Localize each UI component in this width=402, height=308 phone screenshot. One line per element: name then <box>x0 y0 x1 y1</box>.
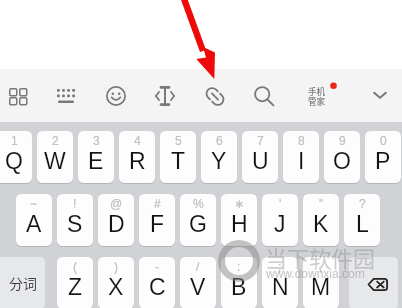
button[interactable]: % <box>180 194 216 246</box>
staticText: 5 <box>175 134 182 147</box>
staticText: S <box>67 211 83 237</box>
button[interactable]: Hide keyboard <box>373 90 387 100</box>
staticText: M <box>311 274 331 300</box>
button[interactable]: ! <box>57 194 93 246</box>
staticText: P <box>375 148 391 174</box>
staticText: W <box>44 148 66 174</box>
button[interactable]: @ <box>98 194 134 246</box>
button[interactable]: Backspace <box>349 257 398 308</box>
staticText: U <box>252 148 269 174</box>
button[interactable]: 7 <box>242 131 278 183</box>
staticText: 2 <box>52 134 59 147</box>
staticText: E <box>88 148 104 174</box>
staticText: R <box>129 148 146 174</box>
staticText: Y <box>211 148 227 174</box>
button[interactable]: 2 <box>37 131 73 183</box>
staticText: 8 <box>298 134 305 147</box>
button[interactable]: # <box>139 194 175 246</box>
staticText: 0 <box>380 134 387 147</box>
staticText: F <box>150 211 165 237</box>
staticText: Q <box>5 148 23 174</box>
staticText: " <box>319 197 324 210</box>
button[interactable]: 手机 管家 <box>304 82 340 108</box>
staticText: ? <box>359 197 366 210</box>
staticText: B <box>231 274 247 300</box>
button[interactable]: ? <box>344 194 380 246</box>
button[interactable]: " <box>303 194 339 246</box>
staticText: I <box>298 148 305 174</box>
button[interactable]: ~ <box>16 194 52 246</box>
staticText: 1 <box>11 134 18 147</box>
staticText: L <box>356 211 369 237</box>
staticText: N <box>272 274 289 300</box>
staticText: 手机 管家 <box>308 85 326 107</box>
staticText: O <box>333 148 351 174</box>
staticText: , <box>319 260 323 273</box>
staticText: H <box>231 211 248 237</box>
button[interactable]: ; <box>262 257 298 308</box>
staticText: % <box>193 197 204 210</box>
staticText: 4 <box>134 134 141 147</box>
staticText: / <box>196 260 200 273</box>
button[interactable]: Move cursor <box>155 85 175 107</box>
staticText: : <box>237 260 241 273</box>
button[interactable]: 8 <box>283 131 319 183</box>
button[interactable]: 4 <box>119 131 155 183</box>
button[interactable]: ( <box>57 257 93 308</box>
staticText: K <box>313 211 329 237</box>
button[interactable]: , <box>303 257 339 308</box>
button[interactable]: Symbols <box>9 88 26 104</box>
staticText: 9 <box>339 134 346 147</box>
button[interactable]: 9 <box>324 131 360 183</box>
button[interactable]: 1 <box>0 131 32 183</box>
staticText: 7 <box>257 134 264 147</box>
staticText: # <box>154 197 161 210</box>
button[interactable]: Emoji <box>106 86 126 106</box>
staticText: V <box>190 274 206 300</box>
staticText: ! <box>73 197 77 210</box>
staticText: C <box>149 274 166 300</box>
staticText: G <box>189 211 207 237</box>
button[interactable]: 分词 <box>0 257 45 308</box>
button[interactable]: 5 <box>160 131 196 183</box>
staticText: Z <box>68 274 83 300</box>
button[interactable]: ' <box>262 194 298 246</box>
button[interactable]: 3 <box>78 131 114 183</box>
button[interactable]: : <box>221 257 257 308</box>
button[interactable]: ) <box>98 257 134 308</box>
staticText: 分词 <box>9 273 37 293</box>
staticText: ) <box>114 260 118 273</box>
button[interactable]: 0 <box>365 131 401 183</box>
button[interactable]: Search <box>254 86 274 106</box>
staticText: 当下软件园 <box>265 241 376 273</box>
staticText: ∗ <box>234 197 245 211</box>
staticText: A <box>26 211 42 237</box>
staticText: D <box>108 211 125 237</box>
staticText: www.downxia.com <box>266 267 365 280</box>
staticText: @ <box>110 197 123 210</box>
staticText: X <box>108 274 124 300</box>
staticText: ' <box>279 197 282 210</box>
button[interactable]: Insert link <box>205 86 225 107</box>
staticText: ~ <box>30 197 38 210</box>
staticText: J <box>274 211 286 237</box>
staticText: ( <box>73 260 77 273</box>
button[interactable]: ∗ <box>221 194 257 246</box>
staticText: 3 <box>93 134 100 147</box>
button[interactable]: / <box>180 257 216 308</box>
button[interactable]: - <box>139 257 175 308</box>
button[interactable]: 6 <box>201 131 237 183</box>
staticText: 6 <box>216 134 223 147</box>
staticText: T <box>171 148 186 174</box>
staticText: ; <box>278 260 282 273</box>
button[interactable]: Keyboard <box>57 89 75 103</box>
staticText: - <box>155 260 159 273</box>
